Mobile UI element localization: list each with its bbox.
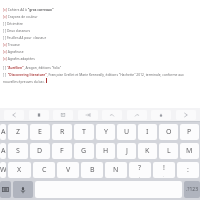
- button[interactable]: H: [96, 143, 115, 159]
- staticText: A: [1, 127, 6, 137]
- staticText: A: [1, 146, 6, 156]
- staticText: F: [60, 146, 64, 156]
- staticText: Z: [16, 127, 21, 137]
- button[interactable]: D: [30, 143, 50, 159]
- button[interactable]: Previous: [4, 110, 24, 120]
- staticText: B: [90, 165, 95, 175]
- staticText: C: [42, 165, 47, 175]
- staticText: K: [145, 146, 150, 156]
- staticText: U: [124, 127, 130, 137]
- button[interactable]: Undo: [102, 110, 122, 120]
- button[interactable]: [x] Cahiers A4 à "gros carreaux": [3, 5, 198, 12]
- staticText: N: [113, 165, 119, 175]
- staticText: .?123: [186, 186, 199, 193]
- button[interactable]: Voice input: [13, 181, 33, 198]
- staticText: I: [146, 127, 149, 137]
- button[interactable]: G: [74, 143, 94, 159]
- button[interactable]: F: [52, 143, 72, 159]
- staticText: [ ] Décimètre: [3, 21, 23, 25]
- staticText: Y: [104, 127, 108, 137]
- button[interactable]: K: [138, 143, 157, 159]
- staticText: [x] Agrafeuse: [3, 49, 24, 53]
- staticText: E: [38, 127, 42, 137]
- button[interactable]: B: [81, 162, 103, 178]
- button[interactable]: .?123: [184, 181, 200, 198]
- staticText: V: [66, 165, 71, 175]
- button[interactable]: X: [8, 162, 31, 178]
- button[interactable]: Clipboard: [29, 110, 49, 120]
- button[interactable]: Next: [176, 110, 196, 120]
- button[interactable]: ?: [129, 162, 151, 178]
- button[interactable]: [ ] "Aurélien", Aragon, éditions "folio": [3, 63, 198, 70]
- button[interactable]: A: [0, 143, 6, 159]
- staticText: [x] Crayons de couleur: [3, 14, 38, 18]
- staticText: [x] Cahiers A4 à "gros carreaux": [3, 7, 54, 11]
- staticText: ?: [138, 163, 142, 173]
- button[interactable]: L: [159, 143, 178, 159]
- button[interactable]: I: [138, 124, 157, 140]
- button[interactable]: V: [57, 162, 79, 178]
- button[interactable]: [ ] "Discovering literature", Françoise …: [3, 70, 198, 84]
- staticText: .: [163, 173, 165, 178]
- button[interactable]: T: [74, 124, 94, 140]
- staticText: :: [187, 165, 189, 175]
- staticText: [ ] Feuilles A4 pour classeur: [3, 35, 47, 39]
- button[interactable]: [ ] Deux classeurs: [3, 26, 198, 33]
- button[interactable]: [ ] Décimètre: [3, 19, 198, 26]
- button[interactable]: Tab: [78, 110, 98, 120]
- button[interactable]: [x] Trousse: [3, 40, 198, 47]
- staticText: ,: [139, 173, 141, 178]
- button[interactable]: [x] Crayons de couleur: [3, 12, 198, 19]
- button[interactable]: A: [0, 124, 6, 140]
- staticText: O: [166, 127, 172, 137]
- staticText: J: [126, 146, 128, 156]
- staticText: [ ] "Discovering literature", Françoise …: [3, 72, 184, 76]
- staticText: D: [37, 146, 43, 156]
- button[interactable]: R: [52, 124, 72, 140]
- staticText: nouvelles épreuves du bac.: [3, 79, 45, 83]
- button[interactable]: !: [153, 162, 175, 178]
- button[interactable]: O: [159, 124, 178, 140]
- staticText: G: [81, 146, 87, 156]
- staticText: [x] Agrafes adaptées: [3, 56, 35, 60]
- button[interactable]: Redo: [127, 110, 147, 120]
- staticText: [ ] Deux classeurs: [3, 28, 31, 32]
- staticText: M: [186, 146, 193, 156]
- button[interactable]: Select: [53, 110, 73, 120]
- button[interactable]: U: [117, 124, 136, 140]
- button[interactable]: [x] Agrafes adaptées: [3, 54, 198, 61]
- staticText: H: [103, 146, 109, 156]
- button[interactable]: [x] Agrafeuse: [3, 47, 198, 54]
- button[interactable]: J: [117, 143, 136, 159]
- button[interactable]: Z: [8, 124, 28, 140]
- button[interactable]: C: [33, 162, 55, 178]
- staticText: !: [163, 163, 165, 173]
- staticText: W: [0, 165, 6, 175]
- staticText: [x] Trousse: [3, 42, 20, 46]
- button[interactable]: P: [180, 124, 199, 140]
- staticText: P: [187, 127, 192, 137]
- button[interactable]: Y: [96, 124, 115, 140]
- staticText: [ ] "Aurélien", Aragon, éditions "folio": [3, 65, 62, 69]
- staticText: S: [16, 146, 20, 156]
- button[interactable]: M: [180, 143, 199, 159]
- button[interactable]: Switch keyboard: [0, 181, 11, 198]
- button[interactable]: S: [8, 143, 28, 159]
- button[interactable]: E: [30, 124, 50, 140]
- button[interactable]: [ ] Feuilles A4 pour classeur: [3, 33, 198, 40]
- staticText: L: [167, 146, 171, 156]
- button[interactable]: W: [0, 162, 6, 178]
- staticText: X: [17, 165, 22, 175]
- button[interactable]: N: [105, 162, 127, 178]
- button[interactable]: Lock: [151, 110, 171, 120]
- staticText: R: [60, 127, 65, 137]
- staticText: T: [82, 127, 86, 137]
- button[interactable]: :: [177, 162, 199, 178]
